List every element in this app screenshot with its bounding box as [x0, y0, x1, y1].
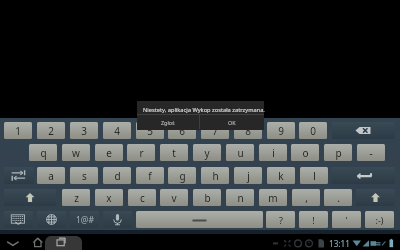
button[interactable]: Recent apps	[45, 236, 82, 250]
button[interactable]: 8	[234, 122, 262, 139]
button[interactable]: d	[103, 167, 131, 184]
button[interactable]: Backspace	[332, 122, 395, 139]
button[interactable]: Change language	[37, 211, 66, 228]
button[interactable]: q	[29, 144, 57, 161]
button[interactable]: !	[299, 211, 328, 228]
button[interactable]: z	[62, 189, 90, 206]
staticText: m	[268, 191, 278, 205]
button[interactable]: v	[160, 189, 188, 206]
button[interactable]: Space	[136, 211, 263, 228]
staticText: 1	[15, 124, 21, 138]
staticText: 7	[212, 124, 218, 138]
button[interactable]: 4	[103, 122, 131, 139]
staticText: c	[140, 191, 145, 205]
staticText: h	[212, 169, 219, 183]
staticText: g	[179, 169, 186, 183]
staticText: r	[139, 146, 144, 160]
button[interactable]: 2	[37, 122, 65, 139]
button[interactable]: y	[193, 144, 221, 161]
button[interactable]: -	[357, 144, 385, 161]
staticText: b	[204, 191, 211, 205]
staticText: 4	[114, 124, 120, 138]
button[interactable]: '	[332, 211, 361, 228]
staticText: u	[237, 146, 244, 160]
button[interactable]: h	[201, 167, 229, 184]
staticText: 13:11	[329, 238, 350, 249]
button[interactable]: s	[70, 167, 98, 184]
staticText: x	[106, 191, 112, 205]
staticText: w	[72, 146, 80, 160]
staticText: ,	[305, 191, 308, 205]
button[interactable]: OK	[200, 115, 264, 129]
button[interactable]: c	[128, 189, 156, 206]
button[interactable]: Tab	[4, 167, 34, 184]
staticText: s	[82, 169, 87, 183]
button[interactable]: .	[324, 189, 352, 206]
button[interactable]: r	[127, 144, 155, 161]
button[interactable]: t	[160, 144, 188, 161]
button[interactable]: w	[62, 144, 90, 161]
button[interactable]: Shift	[4, 189, 56, 206]
staticText: '	[345, 214, 348, 226]
button[interactable]: 9	[267, 122, 295, 139]
button[interactable]: 5	[136, 122, 164, 139]
staticText: l	[313, 169, 316, 183]
button[interactable]: 1	[4, 122, 32, 139]
button[interactable]: k	[267, 167, 295, 184]
staticText: Zgłoś	[161, 119, 175, 126]
staticText: v	[171, 191, 177, 205]
button[interactable]: 3	[70, 122, 98, 139]
staticText: t	[172, 146, 176, 160]
staticText: -	[369, 146, 373, 160]
staticText: y	[204, 146, 210, 160]
button[interactable]: Back	[3, 236, 23, 250]
staticText: 1@#	[76, 214, 94, 226]
staticText: .	[337, 191, 340, 205]
button[interactable]: f	[136, 167, 164, 184]
button[interactable]: l	[300, 167, 328, 184]
staticText: q	[40, 146, 47, 160]
button[interactable]: o	[291, 144, 319, 161]
button[interactable]: i	[259, 144, 287, 161]
button[interactable]: ,	[292, 189, 320, 206]
button[interactable]: m	[259, 189, 287, 206]
staticText: d	[114, 169, 121, 183]
button[interactable]	[137, 101, 264, 130]
button[interactable]: j	[234, 167, 262, 184]
button[interactable]: 7	[201, 122, 229, 139]
button[interactable]: u	[226, 144, 254, 161]
button[interactable]: x	[95, 189, 123, 206]
button[interactable]: Hide keyboard	[4, 211, 33, 228]
button[interactable]: 0	[299, 122, 327, 139]
staticText: z	[74, 191, 79, 205]
button[interactable]: Shift	[356, 189, 395, 206]
button[interactable]: 6	[168, 122, 196, 139]
staticText: 0	[310, 124, 316, 138]
button[interactable]: p	[324, 144, 352, 161]
staticText: j	[247, 169, 250, 183]
staticText: 2	[48, 124, 54, 138]
button[interactable]: b	[193, 189, 221, 206]
staticText: k	[278, 169, 284, 183]
button[interactable]: Voice input	[103, 211, 132, 228]
button[interactable]: Home	[28, 236, 48, 250]
staticText: OK	[228, 119, 236, 126]
staticText: 9	[278, 124, 284, 138]
button[interactable]: Enter	[331, 167, 395, 184]
staticText: 5	[147, 124, 153, 138]
staticText: Niestety, aplikacja Wykop została zatrzy…	[143, 106, 265, 114]
staticText: ?	[279, 214, 283, 226]
button[interactable]: g	[168, 167, 196, 184]
button[interactable]: 1@#	[70, 211, 99, 228]
button[interactable]: :-)	[365, 211, 394, 228]
staticText: 3	[81, 124, 87, 138]
staticText: n	[237, 191, 244, 205]
staticText: 6	[179, 124, 185, 138]
button[interactable]: e	[95, 144, 123, 161]
button[interactable]: ?	[266, 211, 295, 228]
staticText: e	[106, 146, 112, 160]
button[interactable]: a	[37, 167, 65, 184]
button[interactable]: n	[226, 189, 254, 206]
button[interactable]: Zgłoś	[137, 115, 199, 129]
staticText: !	[312, 214, 315, 226]
